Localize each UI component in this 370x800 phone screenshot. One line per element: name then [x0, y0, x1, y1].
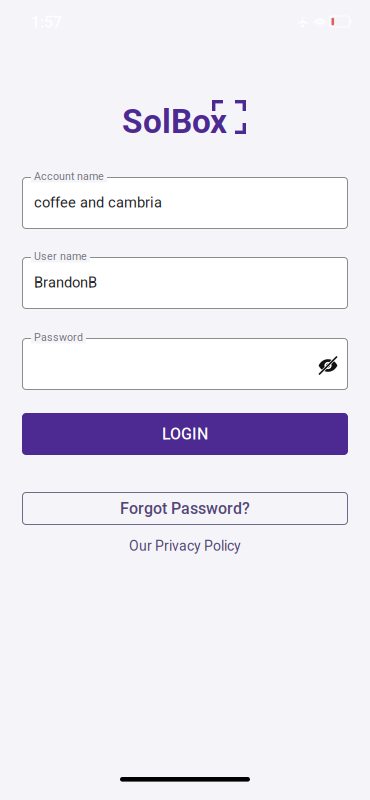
staticText: Our Privacy Policy [129, 538, 241, 554]
staticText: BrandonB [34, 274, 97, 291]
staticText: coffee and cambria [34, 194, 162, 211]
staticText: 1:57 [31, 13, 62, 32]
button[interactable]: Our Privacy Policy [22, 533, 348, 559]
staticText: Password [34, 331, 83, 343]
staticText: User name [34, 250, 87, 262]
staticText: Forgot Password? [120, 499, 250, 518]
staticText: LOGIN [162, 425, 208, 443]
staticText: SolBox [122, 102, 227, 141]
button[interactable]: LOGIN [22, 413, 348, 455]
button[interactable]: Hide password [304, 347, 338, 381]
button[interactable]: Forgot Password? [22, 492, 348, 525]
staticText: Account name [34, 170, 104, 182]
